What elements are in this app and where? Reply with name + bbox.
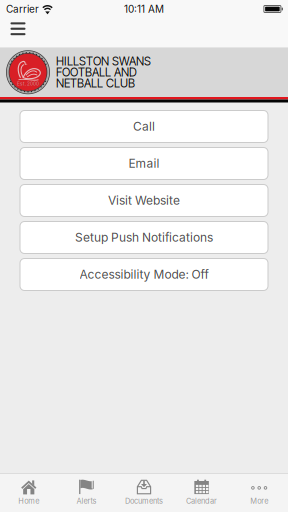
staticText: 10:11 AM <box>124 3 164 15</box>
button[interactable]: Call <box>20 110 268 142</box>
button[interactable]: Documents <box>115 474 173 512</box>
staticText: FOOTBALL AND <box>56 65 137 79</box>
staticText: Call <box>133 119 155 134</box>
staticText: More <box>250 497 268 506</box>
staticText: Alerts <box>76 497 96 506</box>
staticText: Accessibility Mode: Off <box>79 267 208 282</box>
staticText: Documents <box>125 497 163 506</box>
button[interactable]: Alerts <box>58 474 115 512</box>
button[interactable]: Email <box>20 147 268 179</box>
staticText: Est. 2000 <box>17 81 39 87</box>
staticText: Home <box>18 497 39 506</box>
staticText: Carrier <box>6 3 39 15</box>
staticText: Calendar <box>186 497 217 506</box>
button[interactable]: More <box>230 474 288 512</box>
staticText: Email <box>128 156 159 171</box>
button[interactable]: Visit Website <box>20 184 268 216</box>
staticText: NETBALL CLUB <box>56 76 135 90</box>
button[interactable]: Menu <box>0 19 34 47</box>
button[interactable]: Accessibility Mode: Off <box>20 258 268 290</box>
button[interactable]: Setup Push Notifications <box>20 221 268 253</box>
staticText: Setup Push Notifications <box>75 230 213 245</box>
staticText: HILLSTON SWANS <box>56 54 151 68</box>
staticText: Visit Website <box>108 193 180 208</box>
button[interactable]: Home <box>0 474 58 512</box>
button[interactable]: Calendar <box>173 474 230 512</box>
